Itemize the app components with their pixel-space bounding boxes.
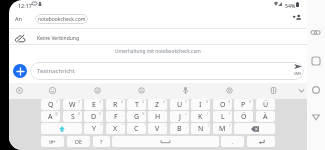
staticText: Ü: [263, 100, 269, 110]
staticText: T: [135, 100, 139, 110]
staticText: An: [15, 15, 23, 23]
button[interactable]: Backspace: [234, 123, 275, 134]
staticText: .: [232, 138, 234, 146]
button[interactable]: Emoji: [47, 85, 57, 95]
staticText: 5: [142, 99, 145, 104]
staticText: &: [142, 111, 145, 116]
button[interactable]: M: [213, 123, 232, 134]
staticText: 54%: [285, 2, 296, 9]
button[interactable]: Ö: [234, 111, 253, 122]
button[interactable]: U: [170, 99, 189, 110]
staticText: S: [71, 112, 75, 122]
staticText: L: [221, 112, 225, 122]
button[interactable]: ?: [93, 136, 110, 147]
staticText: Y: [92, 124, 96, 134]
staticText: 7: [185, 99, 188, 104]
staticText: 8: [206, 99, 209, 104]
button[interactable]: D: [84, 111, 103, 122]
staticText: Unterhaltung mit notebookcheck.com: [115, 48, 201, 55]
staticText: C: [134, 124, 139, 134]
staticText: K: [198, 112, 203, 122]
button[interactable]: C: [127, 123, 146, 134]
staticText: DE: [75, 138, 83, 145]
button[interactable]: Z: [148, 99, 167, 110]
button[interactable]: K: [191, 111, 210, 122]
staticText: 9: [228, 99, 231, 104]
button[interactable]: V: [148, 123, 167, 134]
staticText: €: [99, 111, 102, 116]
button[interactable]: Assistant: [14, 85, 24, 95]
staticText: 1: [56, 99, 59, 104]
button[interactable]: T: [127, 99, 146, 110]
staticText: 6: [163, 99, 166, 104]
button[interactable]: Add recipient: [290, 12, 305, 23]
staticText: +: [185, 111, 188, 116]
staticText: A: [48, 112, 53, 122]
staticText: ?: [229, 123, 231, 128]
button[interactable]: N: [191, 123, 210, 134]
button[interactable]: X: [106, 123, 125, 134]
button[interactable]: Textnachricht: [30, 62, 304, 80]
staticText: ;: [187, 123, 188, 128]
button[interactable]: W: [63, 99, 82, 110]
button[interactable]: .: [221, 136, 244, 147]
button[interactable]: Clipboard: [268, 85, 278, 95]
staticText: Textnachricht: [37, 67, 75, 75]
button[interactable]: R: [106, 99, 125, 110]
button[interactable]: Recents: [309, 54, 322, 67]
button[interactable]: Send SMS: [291, 62, 304, 80]
button[interactable]: Settings: [224, 85, 234, 95]
staticText: Keine Verbindung: [37, 35, 79, 42]
staticText: V: [155, 124, 160, 134]
button[interactable]: Y: [84, 123, 103, 134]
button[interactable]: Collapse toolbar: [296, 85, 306, 95]
button[interactable]: Space: [112, 136, 219, 147]
staticText: Q: [48, 100, 54, 110]
button[interactable]: Q: [41, 99, 60, 110]
button[interactable]: O: [213, 99, 232, 110]
staticText: Ä: [263, 112, 268, 122]
staticText: ?: [100, 138, 103, 145]
button[interactable]: S: [63, 111, 82, 122]
button[interactable]: Enter: [247, 136, 275, 147]
button[interactable]: Back: [309, 110, 322, 123]
staticText: U: [177, 100, 183, 110]
button[interactable]: Add attachment: [13, 64, 27, 78]
staticText: @: [55, 111, 59, 116]
staticText: P: [241, 100, 246, 110]
button[interactable]: Ä: [256, 111, 275, 122]
button[interactable]: H: [148, 111, 167, 122]
button[interactable]: E: [84, 99, 103, 110]
button[interactable]: G: [127, 111, 146, 122]
staticText: H: [155, 112, 161, 122]
staticText: I: [199, 100, 202, 110]
button[interactable]: L: [213, 111, 232, 122]
staticText: R: [113, 100, 118, 110]
staticText: M: [219, 124, 226, 134]
button[interactable]: Symbols: [41, 136, 64, 147]
button[interactable]: B: [170, 123, 189, 134]
button[interactable]: J: [170, 111, 189, 122]
staticText: notebookcheck.com: [38, 16, 86, 23]
button[interactable]: Voice input: [180, 85, 190, 95]
button[interactable]: Ü: [256, 99, 275, 110]
button[interactable]: Link: [309, 26, 322, 39]
staticText: #: [78, 111, 81, 116]
staticText: SMS: [294, 71, 302, 76]
staticText: F: [114, 112, 118, 122]
button[interactable]: I: [191, 99, 210, 110]
button[interactable]: GIF: [92, 85, 102, 95]
button[interactable]: Home: [309, 83, 322, 96]
staticText: :: [165, 123, 166, 128]
staticText: !#+: [49, 139, 56, 145]
button[interactable]: Stickers: [136, 85, 146, 95]
button[interactable]: notebookcheck.com: [35, 14, 88, 24]
staticText: 3: [99, 99, 102, 104]
button[interactable]: P: [234, 99, 253, 110]
button[interactable]: Shift: [41, 123, 82, 134]
button[interactable]: A: [41, 111, 60, 122]
staticText: 0: [249, 99, 252, 104]
button[interactable]: Language: [67, 136, 90, 147]
staticText: -: [164, 111, 166, 116]
button[interactable]: F: [106, 111, 125, 122]
